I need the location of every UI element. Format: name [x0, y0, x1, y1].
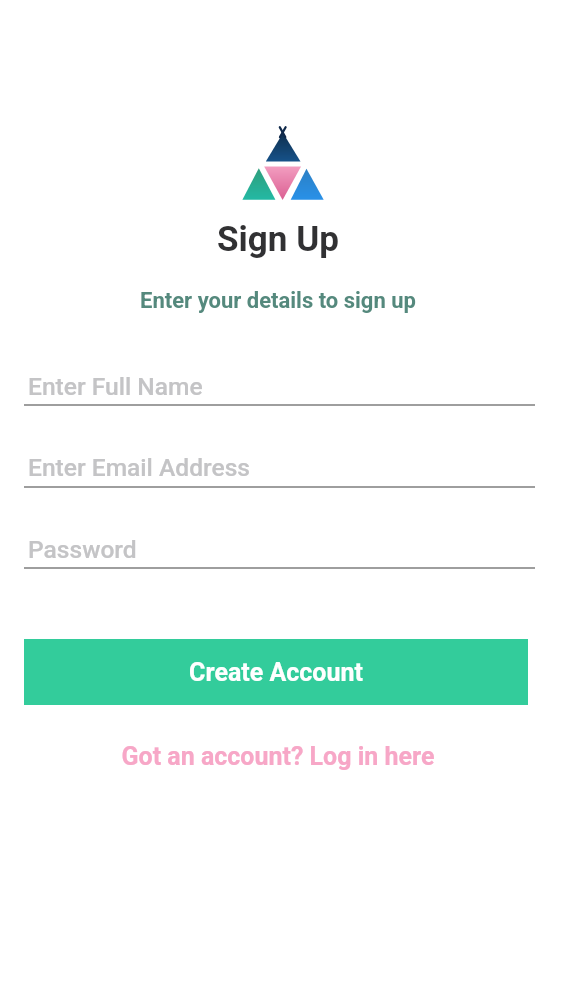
button[interactable]: Password — [24, 513, 535, 569]
staticText: Got an account? Log in here — [121, 742, 435, 771]
staticText: Create Account — [189, 658, 363, 687]
staticText: Enter your details to sign up — [140, 288, 416, 314]
staticText: Enter Full Name — [28, 372, 203, 401]
button[interactable]: Create Account — [24, 639, 528, 705]
staticText: Password — [28, 535, 137, 564]
button[interactable]: Got an account? Log in here — [113, 736, 443, 776]
staticText: Enter Email Address — [28, 453, 250, 482]
button[interactable]: Enter Email Address — [24, 431, 535, 488]
button[interactable]: Enter Full Name — [24, 350, 535, 406]
staticText: Sign Up — [217, 219, 339, 260]
